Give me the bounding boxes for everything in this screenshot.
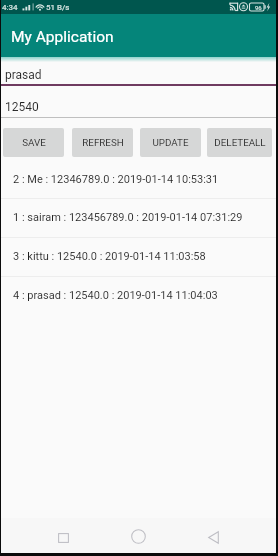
staticText: prasad — [5, 68, 42, 82]
button[interactable]: UPDATE — [140, 128, 201, 157]
staticText: DELETEALL — [214, 137, 266, 148]
button[interactable]: REFRESH — [72, 128, 133, 157]
staticText: UPDATE — [152, 137, 189, 148]
staticText: My Application — [11, 28, 114, 46]
button[interactable]: Home — [92, 518, 184, 553]
button[interactable]: SAVE — [3, 128, 64, 157]
staticText: 96 — [255, 4, 262, 11]
staticText: 51 B/s — [46, 3, 70, 12]
button[interactable]: Recent apps — [1, 518, 92, 553]
button[interactable]: DELETEALL — [207, 128, 272, 157]
staticText: 3 : kittu : 12540.0 : 2019-01-14 11:03:5… — [13, 250, 206, 263]
button[interactable]: 3 : kittu : 12540.0 : 2019-01-14 11:03:5… — [1, 238, 276, 276]
staticText: SAVE — [22, 137, 46, 148]
staticText: 4 : prasad : 12540.0 : 2019-01-14 11:04:… — [13, 289, 218, 302]
button[interactable]: Back — [184, 518, 276, 553]
button[interactable]: 4 : prasad : 12540.0 : 2019-01-14 11:04:… — [1, 277, 276, 315]
staticText: 12540 — [5, 100, 39, 114]
button[interactable]: 2 : Me : 12346789.0 : 2019-01-14 10:53:3… — [1, 161, 276, 198]
staticText: 2 : Me : 12346789.0 : 2019-01-14 10:53:3… — [13, 173, 219, 186]
button[interactable]: 1 : sairam : 123456789.0 : 2019-01-14 07… — [1, 199, 276, 237]
staticText: REFRESH — [82, 137, 124, 148]
staticText: 4:34 — [2, 3, 18, 12]
staticText: 1 : sairam : 123456789.0 : 2019-01-14 07… — [13, 211, 243, 224]
